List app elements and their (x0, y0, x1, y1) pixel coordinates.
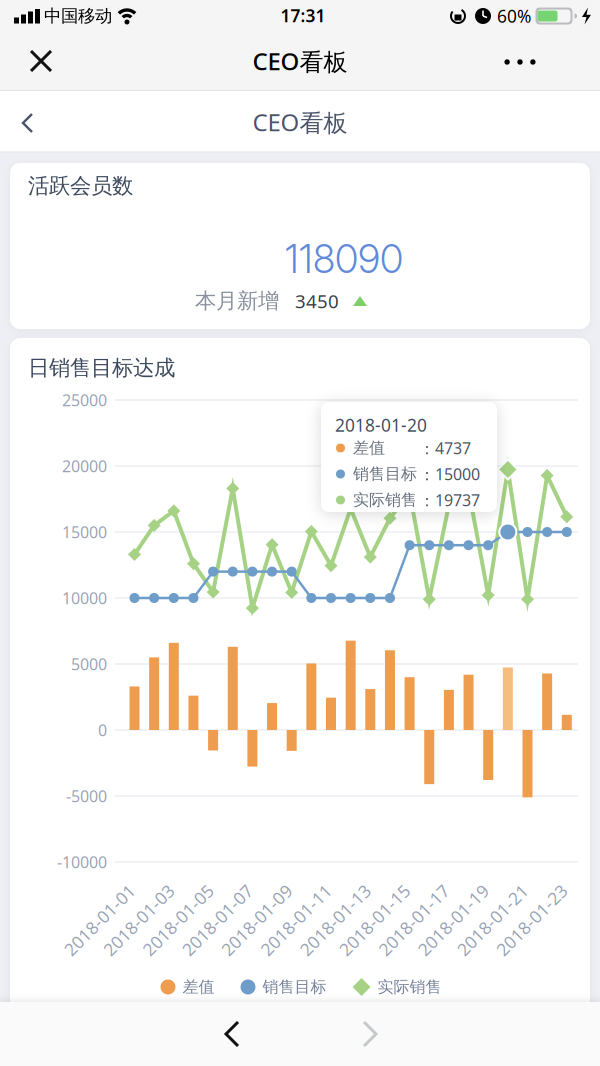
staticText: 60% (497, 4, 531, 27)
staticText: 20000 (62, 455, 107, 477)
staticText: -10000 (57, 851, 107, 873)
staticText: 2018-01-15 (329, 908, 421, 931)
staticText: 实际销售 (377, 977, 441, 997)
staticText: 118090 (285, 236, 403, 282)
staticText: CEO看板 (252, 106, 347, 138)
staticText: 本月新增 (195, 288, 279, 314)
staticText: 10000 (62, 587, 107, 609)
staticText: 5000 (71, 653, 107, 675)
staticText: 销售目标 (262, 977, 326, 997)
staticText: 日销售目标达成 (28, 355, 175, 381)
staticText: ：19737 (419, 489, 480, 511)
staticText: 2018-01-23 (486, 908, 578, 931)
staticText: 2018-01-01 (53, 908, 145, 931)
staticText: 差值 (182, 977, 214, 997)
staticText: 17:31 (280, 4, 325, 27)
staticText: 销售目标 (353, 464, 417, 484)
staticText: 实际销售 (353, 490, 417, 510)
staticText: 15000 (62, 521, 107, 543)
staticText: 2018-01-11 (250, 908, 342, 931)
staticText: ：15000 (419, 463, 480, 485)
staticText: 3450 (295, 289, 339, 313)
staticText: 中国移动 (44, 5, 112, 27)
staticText: 2018-01-05 (132, 908, 224, 931)
staticText: 差值 (353, 438, 385, 458)
staticText: 2018-01-21 (446, 908, 538, 931)
staticText: 2018-01-17 (368, 908, 460, 931)
staticText: 2018-01-20 (335, 413, 427, 436)
staticText: ：4737 (419, 437, 471, 459)
staticText: 2018-01-19 (407, 908, 499, 931)
staticText: 0 (98, 719, 107, 741)
staticText: 2018-01-09 (211, 908, 303, 931)
staticText: -5000 (66, 785, 107, 807)
staticText: 2018-01-03 (93, 908, 185, 931)
staticText: 2018-01-07 (171, 908, 263, 931)
staticText: CEO看板 (252, 45, 347, 77)
staticText: 活跃会员数 (28, 173, 133, 199)
staticText: 25000 (62, 389, 107, 411)
staticText: 2018-01-13 (289, 908, 381, 931)
